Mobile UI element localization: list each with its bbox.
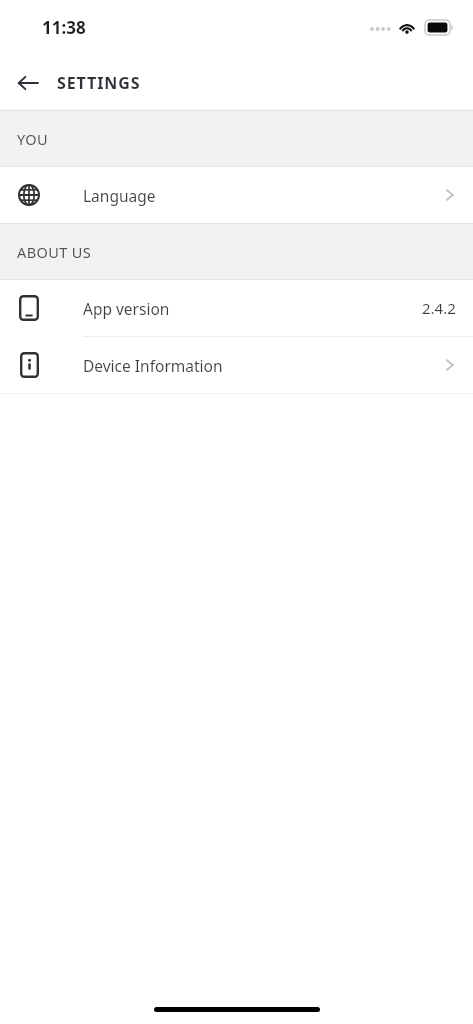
staticText: SETTINGS (57, 72, 141, 94)
staticText: YOU (17, 129, 49, 149)
staticText: 11:38 (42, 16, 86, 39)
staticText: 2.4.2 (422, 298, 456, 318)
button[interactable]: Device Information (0, 337, 473, 393)
staticText: ABOUT US (17, 242, 92, 262)
staticText: Language (83, 185, 156, 206)
button[interactable]: App version (0, 280, 473, 336)
button[interactable]: Language (0, 167, 473, 223)
staticText: Device Information (83, 355, 223, 376)
button[interactable]: Back (9, 64, 47, 102)
staticText: App version (83, 298, 170, 319)
